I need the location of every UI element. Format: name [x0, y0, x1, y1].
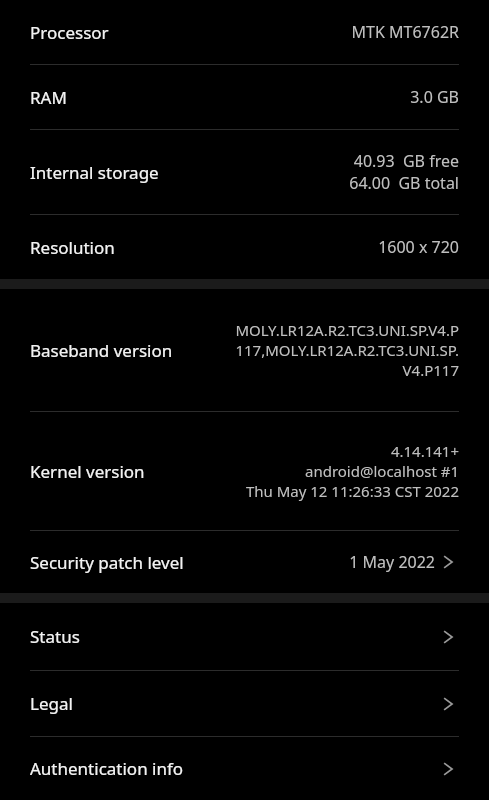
button[interactable]: Baseband version — [0, 289, 489, 411]
staticText: 40.93 GB free — [353, 150, 459, 172]
staticText: Internal storage — [30, 161, 159, 184]
button[interactable]: Processor — [0, 0, 489, 64]
staticText: 3.0 GB — [410, 86, 459, 108]
staticText: Security patch level — [30, 551, 184, 574]
staticText: Processor — [30, 21, 109, 44]
staticText: Authentication info — [30, 757, 184, 780]
staticText: RAM — [30, 86, 67, 109]
button[interactable]: Authentication info — [0, 737, 489, 800]
button[interactable]: RAM — [0, 65, 489, 129]
staticText: 4.14.141+ — [390, 441, 459, 461]
button[interactable]: Legal — [0, 671, 489, 736]
button[interactable]: Security patch level — [0, 531, 489, 593]
staticText: 1600 x 720 — [378, 236, 459, 258]
other: Authentication info — [439, 759, 459, 779]
button[interactable]: Kernel version — [0, 412, 489, 530]
staticText: 1 May 2022 — [349, 551, 435, 573]
staticText: V4.P117 — [402, 360, 459, 380]
staticText: Status — [30, 625, 80, 648]
button[interactable]: Resolution — [0, 215, 489, 279]
staticText: Legal — [30, 692, 73, 715]
staticText: 117,MOLY.LR12A.R2.TC3.UNI.SP. — [235, 340, 459, 360]
other: Legal — [439, 694, 459, 714]
other: Status — [439, 627, 459, 647]
staticText: 64.00 GB total — [349, 172, 459, 194]
staticText: Baseband version — [30, 339, 173, 362]
staticText: Thu May 12 11:26:33 CST 2022 — [245, 481, 459, 501]
staticText: Kernel version — [30, 460, 145, 483]
staticText: android@localhost #1 — [304, 461, 459, 481]
button[interactable]: Internal storage — [0, 130, 489, 214]
button[interactable]: Status — [0, 603, 489, 670]
staticText: MTK MT6762R — [351, 21, 459, 43]
staticText: MOLY.LR12A.R2.TC3.UNI.SP.V4.P — [235, 320, 459, 340]
staticText: Resolution — [30, 236, 115, 259]
